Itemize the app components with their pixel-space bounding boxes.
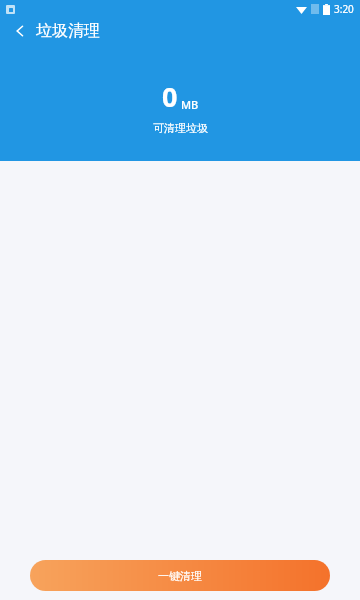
staticText: 可清理垃圾 xyxy=(153,121,208,135)
staticText: 垃圾清理 xyxy=(36,21,100,41)
button[interactable]: 一键清理 xyxy=(30,560,330,591)
button[interactable]: Back xyxy=(4,18,36,44)
staticText: 3:20 xyxy=(334,2,354,16)
staticText: 0 xyxy=(162,78,178,115)
staticText: MB xyxy=(181,97,199,112)
staticText: 一键清理 xyxy=(158,569,202,583)
